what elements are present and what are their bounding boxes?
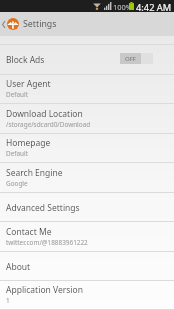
staticText: Application Version (6, 284, 83, 296)
staticText: Default (6, 149, 28, 158)
button[interactable]: Navigate up (0, 12, 6, 36)
button[interactable]: Block Ads (0, 45, 174, 75)
staticText: Google (6, 179, 28, 188)
staticText: User Agent (6, 78, 51, 90)
staticText: Default (6, 90, 28, 99)
staticText: About (6, 261, 31, 273)
staticText: Settings (23, 18, 57, 30)
button[interactable]: Block Ads toggle (120, 53, 153, 64)
button[interactable]: Application Version (0, 281, 174, 310)
staticText: 4:42 AM (136, 1, 172, 13)
staticText: OFF (125, 55, 136, 63)
staticText: Block Ads (6, 54, 45, 66)
staticText: Download Location (6, 108, 83, 120)
button[interactable]: Homepage (0, 134, 174, 163)
button[interactable]: Advanced Settings (0, 193, 174, 222)
staticText: 100% (113, 2, 133, 12)
button[interactable]: Search Engine (0, 163, 174, 193)
button[interactable]: Download Location (0, 104, 174, 134)
button[interactable]: About (0, 252, 174, 281)
staticText: twitter.com/@18883961222 (6, 238, 88, 247)
staticText: Homepage (6, 137, 51, 149)
staticText: /storage/sdcard0/Download (6, 120, 91, 129)
staticText: Advanced Settings (6, 202, 80, 214)
staticText: 1 (6, 296, 10, 305)
staticText: Contact Me (6, 226, 52, 238)
button[interactable]: User Agent (0, 75, 174, 104)
button[interactable]: Contact Me (0, 222, 174, 252)
staticText: Search Engine (6, 167, 63, 179)
